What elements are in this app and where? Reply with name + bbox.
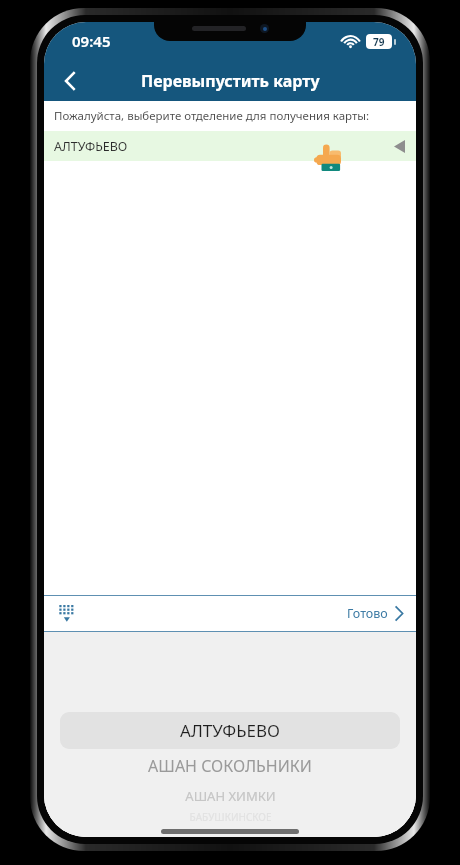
staticText: Перевыпустить карту	[141, 70, 320, 92]
staticText: БАБУШКИНСКОЕ	[189, 810, 272, 824]
staticText: Пожалуйста, выберите отделение для получ…	[54, 108, 370, 124]
button[interactable]: Back	[44, 60, 96, 101]
button[interactable]: АЛТУФЬЕВО	[44, 131, 416, 161]
staticText: АЛТУФЬЕВО	[180, 719, 280, 742]
staticText: 79	[373, 35, 385, 49]
staticText: АШАН ХИМКИ	[185, 787, 276, 805]
button[interactable]: Hide keyboard	[44, 596, 90, 631]
staticText: АЛТУФЬЕВО	[54, 138, 128, 155]
staticText: АШАН СОКОЛЬНИКИ	[148, 755, 312, 777]
button[interactable]: АЛТУФЬЕВО	[60, 712, 400, 749]
staticText: 09:45	[72, 31, 111, 51]
button[interactable]: АШАН ХИМКИ	[44, 783, 416, 809]
staticText: Готово	[347, 605, 388, 622]
button[interactable]: Готово	[335, 596, 416, 631]
button[interactable]: АШАН СОКОЛЬНИКИ	[44, 749, 416, 783]
